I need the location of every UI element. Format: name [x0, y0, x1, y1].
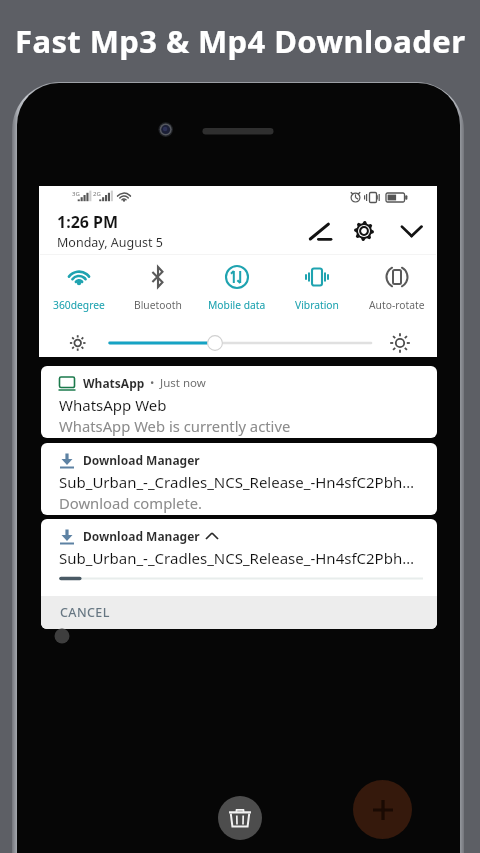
staticText: 360degree — [53, 298, 105, 312]
staticText: WhatsApp Web — [59, 395, 167, 415]
button[interactable]: Vibration — [277, 262, 357, 312]
button[interactable]: Delete — [218, 796, 262, 840]
button[interactable]: CANCEL — [41, 596, 437, 629]
button[interactable]: Collapse — [394, 214, 428, 248]
button[interactable]: Settings — [347, 214, 381, 248]
staticText: Fast Mp3 & Mp4 Downloader — [15, 20, 466, 62]
staticText: Download complete. — [59, 493, 203, 513]
staticText: 2G — [93, 190, 101, 198]
staticText: CANCEL — [60, 604, 110, 621]
button[interactable]: Edit — [303, 211, 337, 245]
staticText: Vibration — [295, 298, 339, 312]
button[interactable]: WhatsApp — [41, 366, 437, 438]
staticText: Monday, August 5 — [57, 234, 163, 251]
button[interactable]: 360degree — [39, 262, 118, 312]
staticText: Download Manager — [83, 452, 200, 468]
staticText: • — [150, 375, 155, 391]
staticText: Sub_Urban_-_Cradles_NCS_Release_-Hn4sfC2… — [59, 472, 415, 492]
staticText: 3G — [72, 190, 80, 198]
button[interactable]: Download Manager — [41, 443, 437, 515]
staticText: 1:26 PM — [57, 211, 119, 233]
staticText: Just now — [160, 375, 206, 391]
staticText: Auto-rotate — [369, 298, 425, 312]
staticText: Bluetooth — [134, 298, 182, 312]
button[interactable]: Bluetooth — [118, 262, 197, 312]
button[interactable]: Auto-rotate — [357, 262, 437, 312]
button[interactable]: Add — [353, 780, 412, 839]
staticText: Mobile data — [208, 298, 266, 312]
staticText: WhatsApp — [83, 375, 145, 391]
staticText: Sub_Urban_-_Cradles_NCS_Release_-Hn4sfC2… — [59, 548, 415, 568]
staticText: WhatsApp Web is currently active — [59, 416, 291, 436]
staticText: Download Manager — [83, 528, 200, 544]
button[interactable]: Mobile data — [197, 262, 277, 312]
